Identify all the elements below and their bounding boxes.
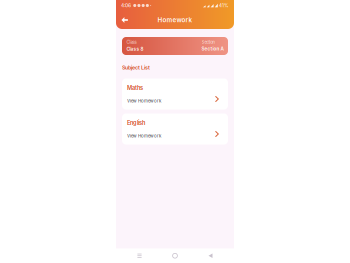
staticText: 41% (219, 3, 229, 8)
button[interactable]: Recents (127, 249, 151, 263)
staticText: English (127, 119, 145, 126)
button[interactable]: English (122, 113, 228, 144)
button[interactable]: Back (198, 249, 222, 263)
staticText: Section (201, 40, 214, 45)
button[interactable]: Home (163, 249, 187, 263)
button[interactable]: Back (121, 17, 128, 23)
staticText: View Homework (127, 133, 161, 139)
staticText: Class 8 (126, 46, 143, 52)
staticText: Homework (157, 16, 192, 24)
staticText: 4:06 (121, 3, 131, 8)
staticText: Class (126, 40, 136, 45)
staticText: Subject List (122, 64, 150, 71)
staticText: Maths (127, 84, 143, 91)
staticText: Section A (201, 46, 223, 52)
button[interactable]: Maths (122, 78, 228, 109)
staticText: View Homework (127, 98, 161, 104)
